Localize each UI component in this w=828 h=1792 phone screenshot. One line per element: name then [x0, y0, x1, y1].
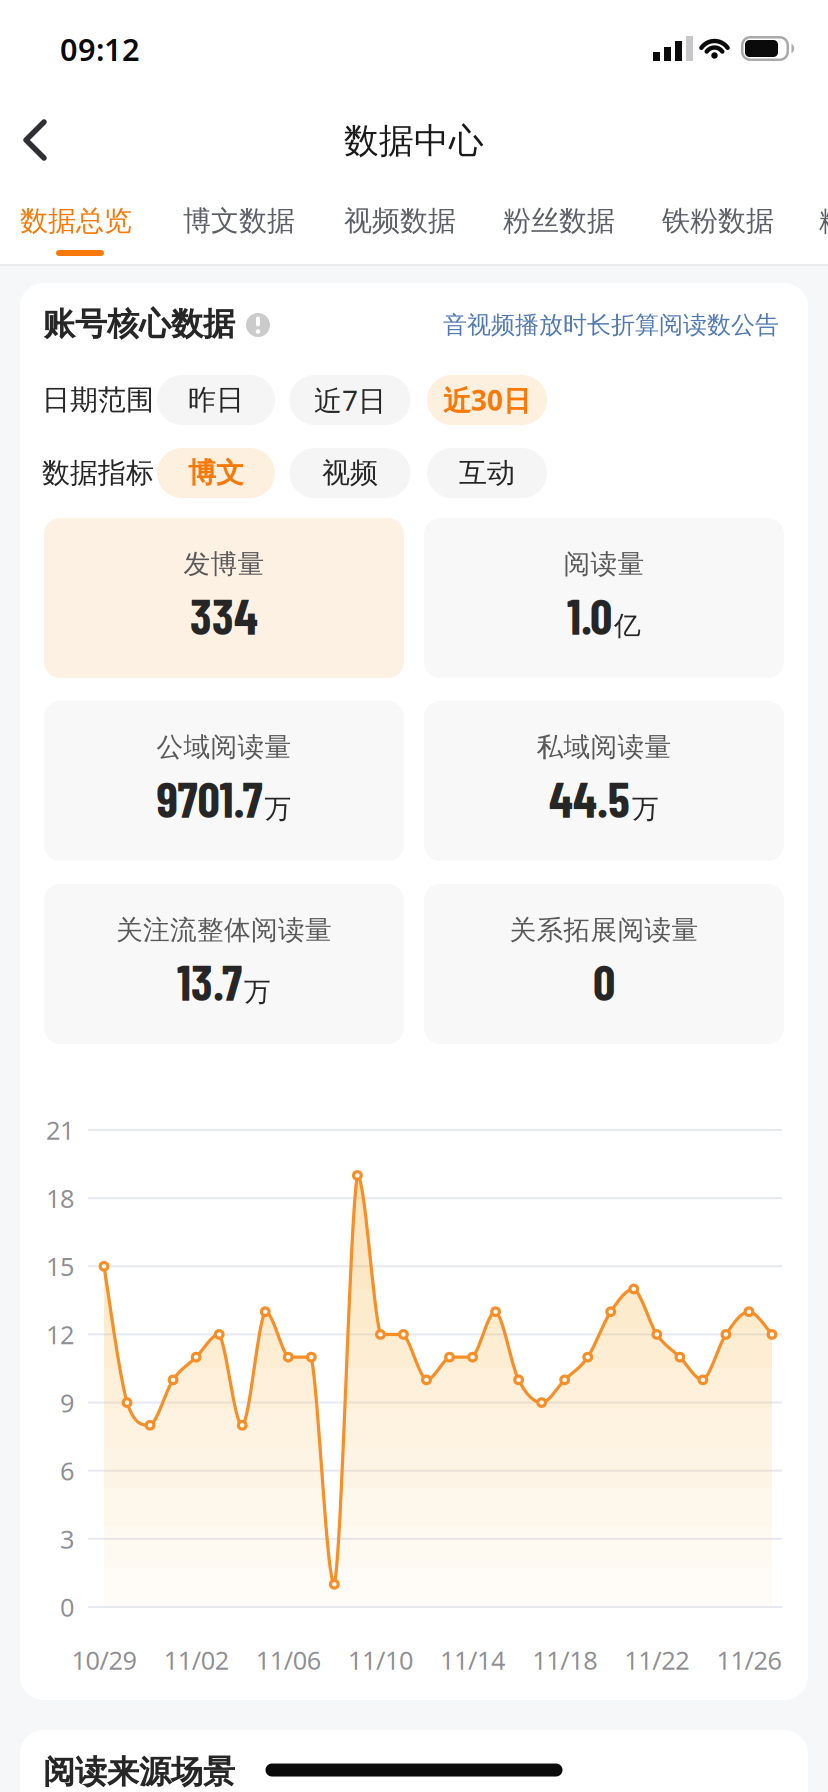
button[interactable]: 近30日 [427, 375, 547, 425]
staticText: 博文数据 [183, 204, 295, 238]
button[interactable]: 数据总览 [8, 189, 144, 253]
staticText: 11/18 [532, 1643, 597, 1677]
button[interactable]: 互动 [427, 448, 547, 498]
button[interactable]: 私域阅读量 [424, 701, 784, 861]
staticText: 09:12 [60, 29, 140, 69]
staticText: 10/29 [71, 1643, 136, 1677]
staticText: 关注流整体阅读量 [116, 914, 332, 946]
button[interactable]: 阅读量 [424, 518, 784, 678]
staticText: 12 [46, 1318, 74, 1351]
staticText: 13.7 [177, 951, 242, 1011]
staticText: 11/22 [624, 1643, 689, 1677]
staticText: 账号核心数据 [43, 304, 235, 344]
staticText: 万 [632, 792, 659, 825]
staticText: 近30日 [443, 381, 531, 419]
staticText: 数据总览 [20, 204, 132, 238]
button[interactable]: 数据说明 [243, 310, 273, 340]
staticText: 11/14 [440, 1643, 505, 1677]
staticText: 近7日 [314, 381, 386, 419]
staticText: 15 [46, 1249, 74, 1283]
staticText: 万 [244, 975, 271, 1008]
staticText: 亿 [614, 609, 641, 642]
staticText: 阅读来源场景 [43, 1752, 235, 1792]
button[interactable]: 铁粉数据 [650, 189, 786, 253]
staticText: 关系拓展阅读量 [509, 914, 698, 946]
staticText: 音视频播放时长折算阅读数公告 [443, 310, 779, 340]
staticText: 万 [264, 792, 291, 825]
button[interactable]: 公域阅读量 [44, 701, 404, 861]
staticText: 粉丝数据 [503, 204, 615, 238]
button[interactable]: 视频 [289, 448, 410, 498]
staticText: 视频数据 [344, 204, 456, 238]
staticText: 11/10 [348, 1643, 413, 1677]
staticText: 铁粉数据 [662, 204, 774, 238]
staticText: 发博量 [183, 548, 264, 580]
staticText: 互动 [459, 456, 515, 490]
staticText: 粉丝服务 [819, 204, 828, 238]
staticText: 11/26 [716, 1643, 781, 1677]
button[interactable]: 音视频播放时长折算阅读数公告 [443, 310, 779, 340]
staticText: 1.0 [567, 585, 612, 645]
button[interactable]: 粉丝数据 [491, 189, 627, 253]
button[interactable]: 发博量 [44, 518, 404, 678]
button[interactable]: 博文 [157, 448, 275, 498]
staticText: 0 [593, 951, 615, 1011]
button[interactable]: 近7日 [289, 375, 410, 425]
button[interactable]: 视频数据 [332, 189, 468, 253]
staticText: 44.5 [549, 768, 630, 828]
staticText: 334 [190, 585, 258, 645]
staticText: 0 [60, 1590, 74, 1624]
button[interactable]: 返回 [12, 112, 60, 168]
staticText: 博文 [188, 456, 244, 490]
staticText: 18 [46, 1181, 74, 1215]
staticText: 11/06 [256, 1643, 321, 1677]
button[interactable]: 昨日 [157, 375, 275, 425]
button[interactable]: 关注流整体阅读量 [44, 884, 404, 1044]
staticText: 昨日 [188, 383, 244, 417]
staticText: 11/02 [164, 1643, 229, 1677]
staticText: 3 [60, 1522, 74, 1556]
staticText: 视频 [322, 456, 378, 490]
staticText: 9 [60, 1386, 74, 1419]
button[interactable]: 粉丝服务 [807, 189, 828, 253]
staticText: 9701.7 [156, 768, 262, 828]
staticText: 公域阅读量 [156, 731, 291, 763]
staticText: 数据指标 [42, 456, 154, 490]
staticText: 阅读量 [563, 548, 644, 580]
staticText: 数据中心 [344, 120, 484, 162]
button[interactable]: 博文数据 [171, 189, 307, 253]
button[interactable]: 关系拓展阅读量 [424, 884, 784, 1044]
staticText: 私域阅读量 [536, 731, 671, 763]
staticText: 日期范围 [42, 383, 154, 417]
staticText: 6 [60, 1454, 74, 1487]
staticText: 21 [46, 1113, 74, 1147]
